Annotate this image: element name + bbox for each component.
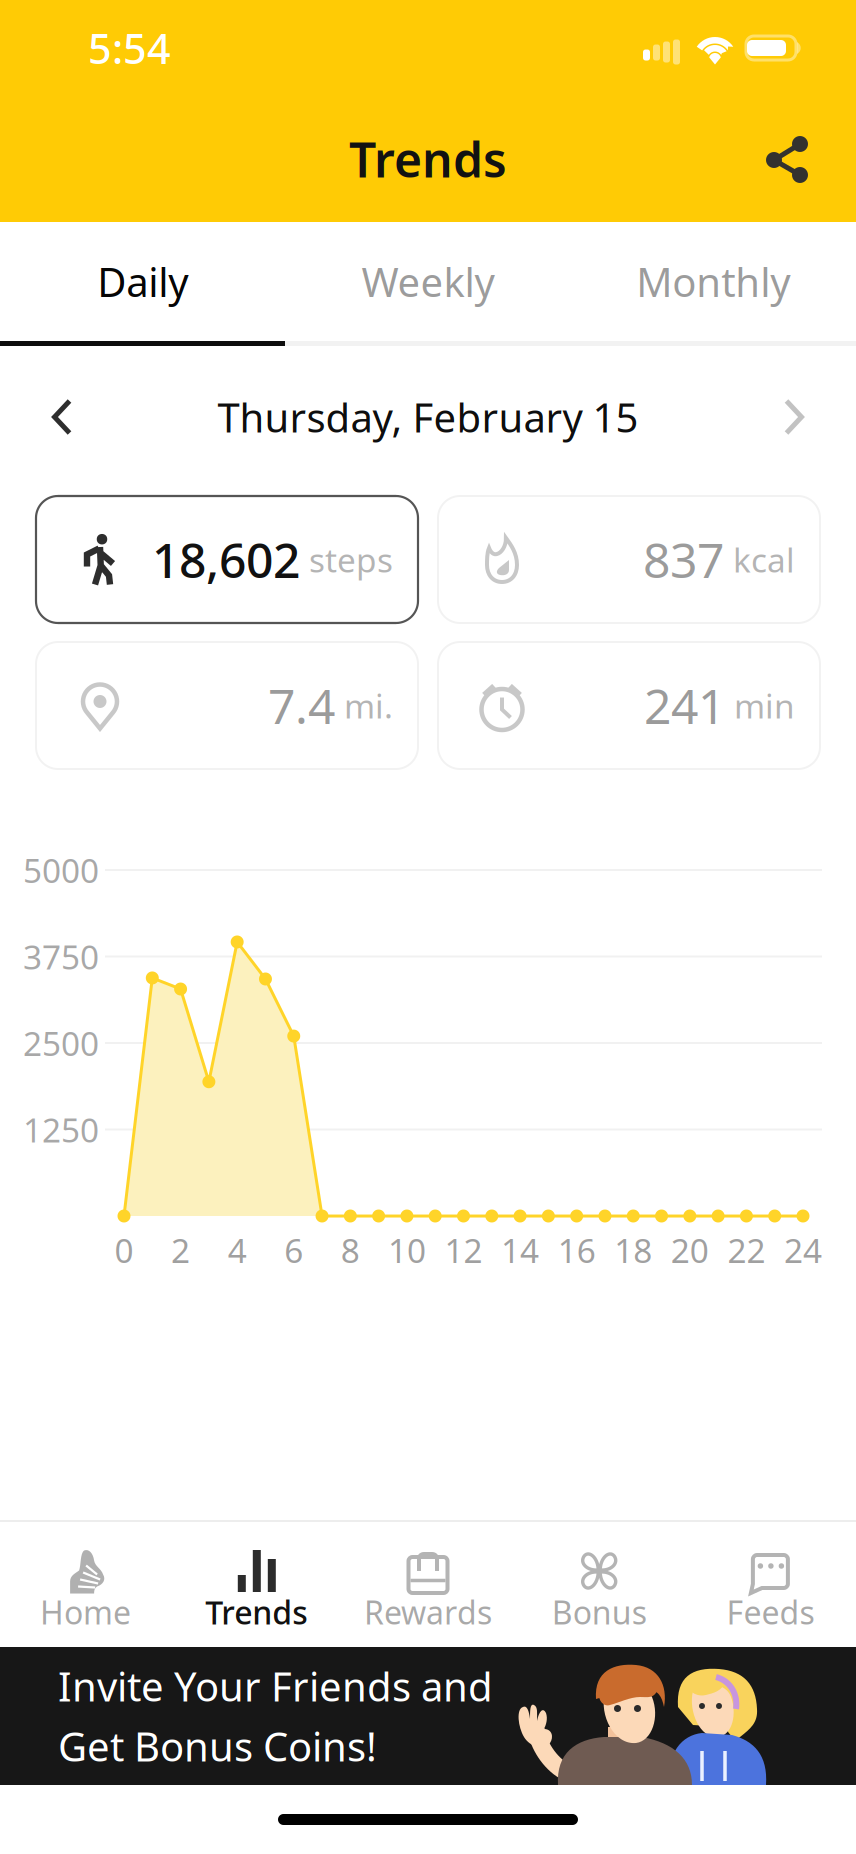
staticText: Monthly <box>636 255 790 308</box>
staticText: kcal <box>733 537 795 582</box>
button[interactable]: 7.4 <box>36 642 418 769</box>
staticText: 16 <box>558 1228 596 1272</box>
button[interactable]: Share <box>741 100 833 218</box>
staticText: 7.4 <box>268 674 335 737</box>
button[interactable]: Invite Your Friends and <box>0 1647 856 1785</box>
button[interactable]: Feeds <box>685 1522 856 1647</box>
staticText: Daily <box>97 255 188 308</box>
button[interactable]: Daily <box>0 222 285 341</box>
staticText: 5:54 <box>88 21 171 75</box>
button[interactable]: Home <box>0 1522 171 1647</box>
staticText: 1250 <box>23 1107 99 1152</box>
staticText: 241 <box>644 674 725 737</box>
staticText: Get Bonus Coins! <box>58 1719 377 1773</box>
staticText: 4 <box>228 1228 247 1272</box>
staticText: 12 <box>444 1228 482 1272</box>
staticText: 3750 <box>23 934 99 979</box>
staticText: 22 <box>727 1228 765 1272</box>
button[interactable]: Weekly <box>285 222 571 341</box>
staticText: 8 <box>341 1228 360 1272</box>
staticText: 18 <box>614 1228 652 1272</box>
button[interactable]: Next day <box>758 381 830 453</box>
staticText: min <box>734 683 795 728</box>
button[interactable]: Rewards <box>342 1522 514 1647</box>
staticText: 2 <box>171 1228 190 1272</box>
staticText: 18,602 <box>152 528 300 591</box>
staticText: Thursday, February 15 <box>217 390 638 443</box>
staticText: Invite Your Friends and <box>58 1659 493 1712</box>
button[interactable]: Monthly <box>571 222 856 341</box>
staticText: 24 <box>784 1228 822 1272</box>
staticText: Trends <box>205 1591 308 1633</box>
staticText: 14 <box>501 1228 539 1272</box>
staticText: Feeds <box>726 1591 814 1633</box>
button[interactable]: 18,602 <box>36 496 418 623</box>
staticText: steps <box>309 537 393 582</box>
button[interactable]: Trends <box>171 1522 342 1647</box>
staticText: 0 <box>114 1228 133 1272</box>
staticText: Trends <box>349 127 507 191</box>
staticText: 6 <box>284 1228 303 1272</box>
staticText: Home <box>40 1591 131 1633</box>
button[interactable]: 837 <box>438 496 820 623</box>
staticText: Rewards <box>364 1591 492 1633</box>
button[interactable]: Previous day <box>26 381 98 453</box>
staticText: 20 <box>671 1228 709 1272</box>
staticText: 2500 <box>23 1021 99 1065</box>
staticText: 837 <box>643 528 724 591</box>
staticText: 5000 <box>23 848 99 892</box>
button[interactable]: Bonus <box>514 1522 685 1647</box>
button[interactable]: 241 <box>438 642 820 769</box>
staticText: 10 <box>388 1228 426 1272</box>
staticText: mi. <box>344 683 393 728</box>
staticText: Weekly <box>361 255 494 308</box>
staticText: Bonus <box>552 1591 647 1633</box>
